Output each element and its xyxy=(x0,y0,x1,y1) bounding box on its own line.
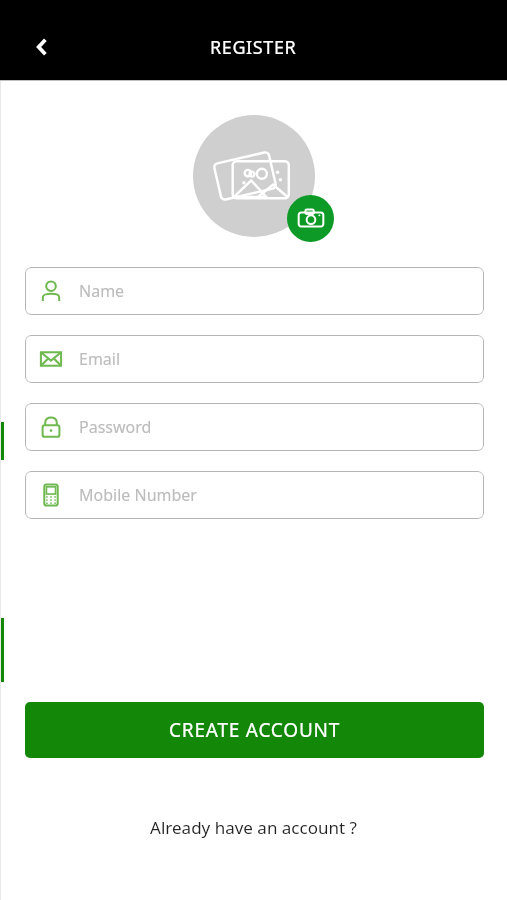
staticText: Email xyxy=(79,348,121,370)
button[interactable]: Profile photo xyxy=(193,115,315,237)
staticText: Mobile Number xyxy=(79,484,197,506)
button[interactable]: Back xyxy=(18,23,66,71)
staticText: Name xyxy=(79,280,125,302)
button[interactable]: CREATE ACCOUNT xyxy=(25,702,484,758)
staticText: CREATE ACCOUNT xyxy=(169,717,341,743)
staticText: REGISTER xyxy=(210,35,297,60)
button[interactable]: Change photo xyxy=(287,195,334,242)
staticText: Password xyxy=(79,416,152,438)
button[interactable]: Name xyxy=(25,267,484,315)
staticText: Already have an account ? xyxy=(150,816,357,839)
button[interactable]: Password xyxy=(25,403,484,451)
button[interactable]: Email xyxy=(25,335,484,383)
button[interactable]: Mobile Number xyxy=(25,471,484,519)
button[interactable]: Already have an account ? xyxy=(0,816,507,839)
